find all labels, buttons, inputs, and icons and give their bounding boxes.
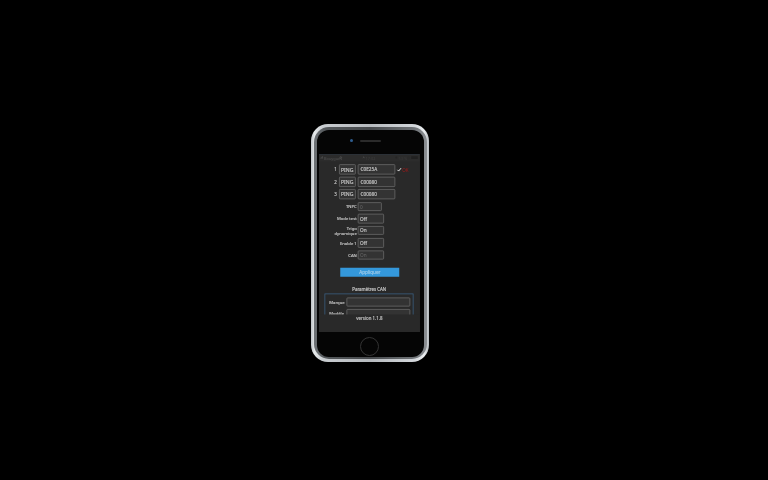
staticText: On (360, 227, 367, 234)
staticText: Enable 1 (323, 240, 357, 246)
staticText: 1 (334, 166, 337, 172)
staticText: C00080 (360, 179, 377, 185)
staticText: Paramètres CAN (352, 286, 386, 292)
staticText: Mode test (323, 216, 357, 222)
staticText: 3 (334, 191, 337, 197)
button[interactable]: PING (339, 189, 356, 199)
button[interactable]: C00080 (358, 177, 395, 187)
staticText: C00080 (360, 191, 377, 197)
button[interactable]: Off (358, 238, 384, 248)
staticText: On (360, 252, 367, 258)
button[interactable]: PING (339, 177, 356, 187)
button[interactable]: Off (358, 214, 384, 224)
staticText: CAN (323, 252, 357, 258)
staticText: Off (360, 215, 367, 222)
staticText: PING (341, 166, 354, 173)
staticText: C0E25A (360, 166, 377, 173)
button[interactable]: On (358, 226, 384, 235)
staticText: version 1.1.8 (356, 315, 383, 321)
staticText: Modèle (329, 311, 344, 317)
staticText: Trigo dynamique (323, 225, 357, 236)
staticText: TNPC (323, 204, 357, 210)
button[interactable]: PING (339, 164, 356, 175)
staticText: 2 (334, 179, 337, 185)
staticText: OK (402, 167, 409, 174)
button[interactable] (346, 309, 410, 318)
button[interactable]: C00080 (358, 189, 395, 199)
staticText: Marque (329, 299, 345, 305)
button[interactable]: C0E25A (358, 164, 395, 175)
staticText: Appliquer (359, 269, 381, 276)
button[interactable]: On (358, 250, 384, 259)
staticText: Bouygues (324, 155, 342, 161)
other: Connexion OK (397, 168, 401, 172)
staticText: PING (341, 191, 354, 198)
button[interactable]: Appliquer (340, 268, 399, 277)
staticText: 0 (360, 203, 363, 210)
button[interactable] (346, 297, 410, 306)
staticText: Off (360, 240, 367, 246)
staticText: PING (341, 178, 354, 185)
button[interactable]: 0 (358, 202, 382, 211)
